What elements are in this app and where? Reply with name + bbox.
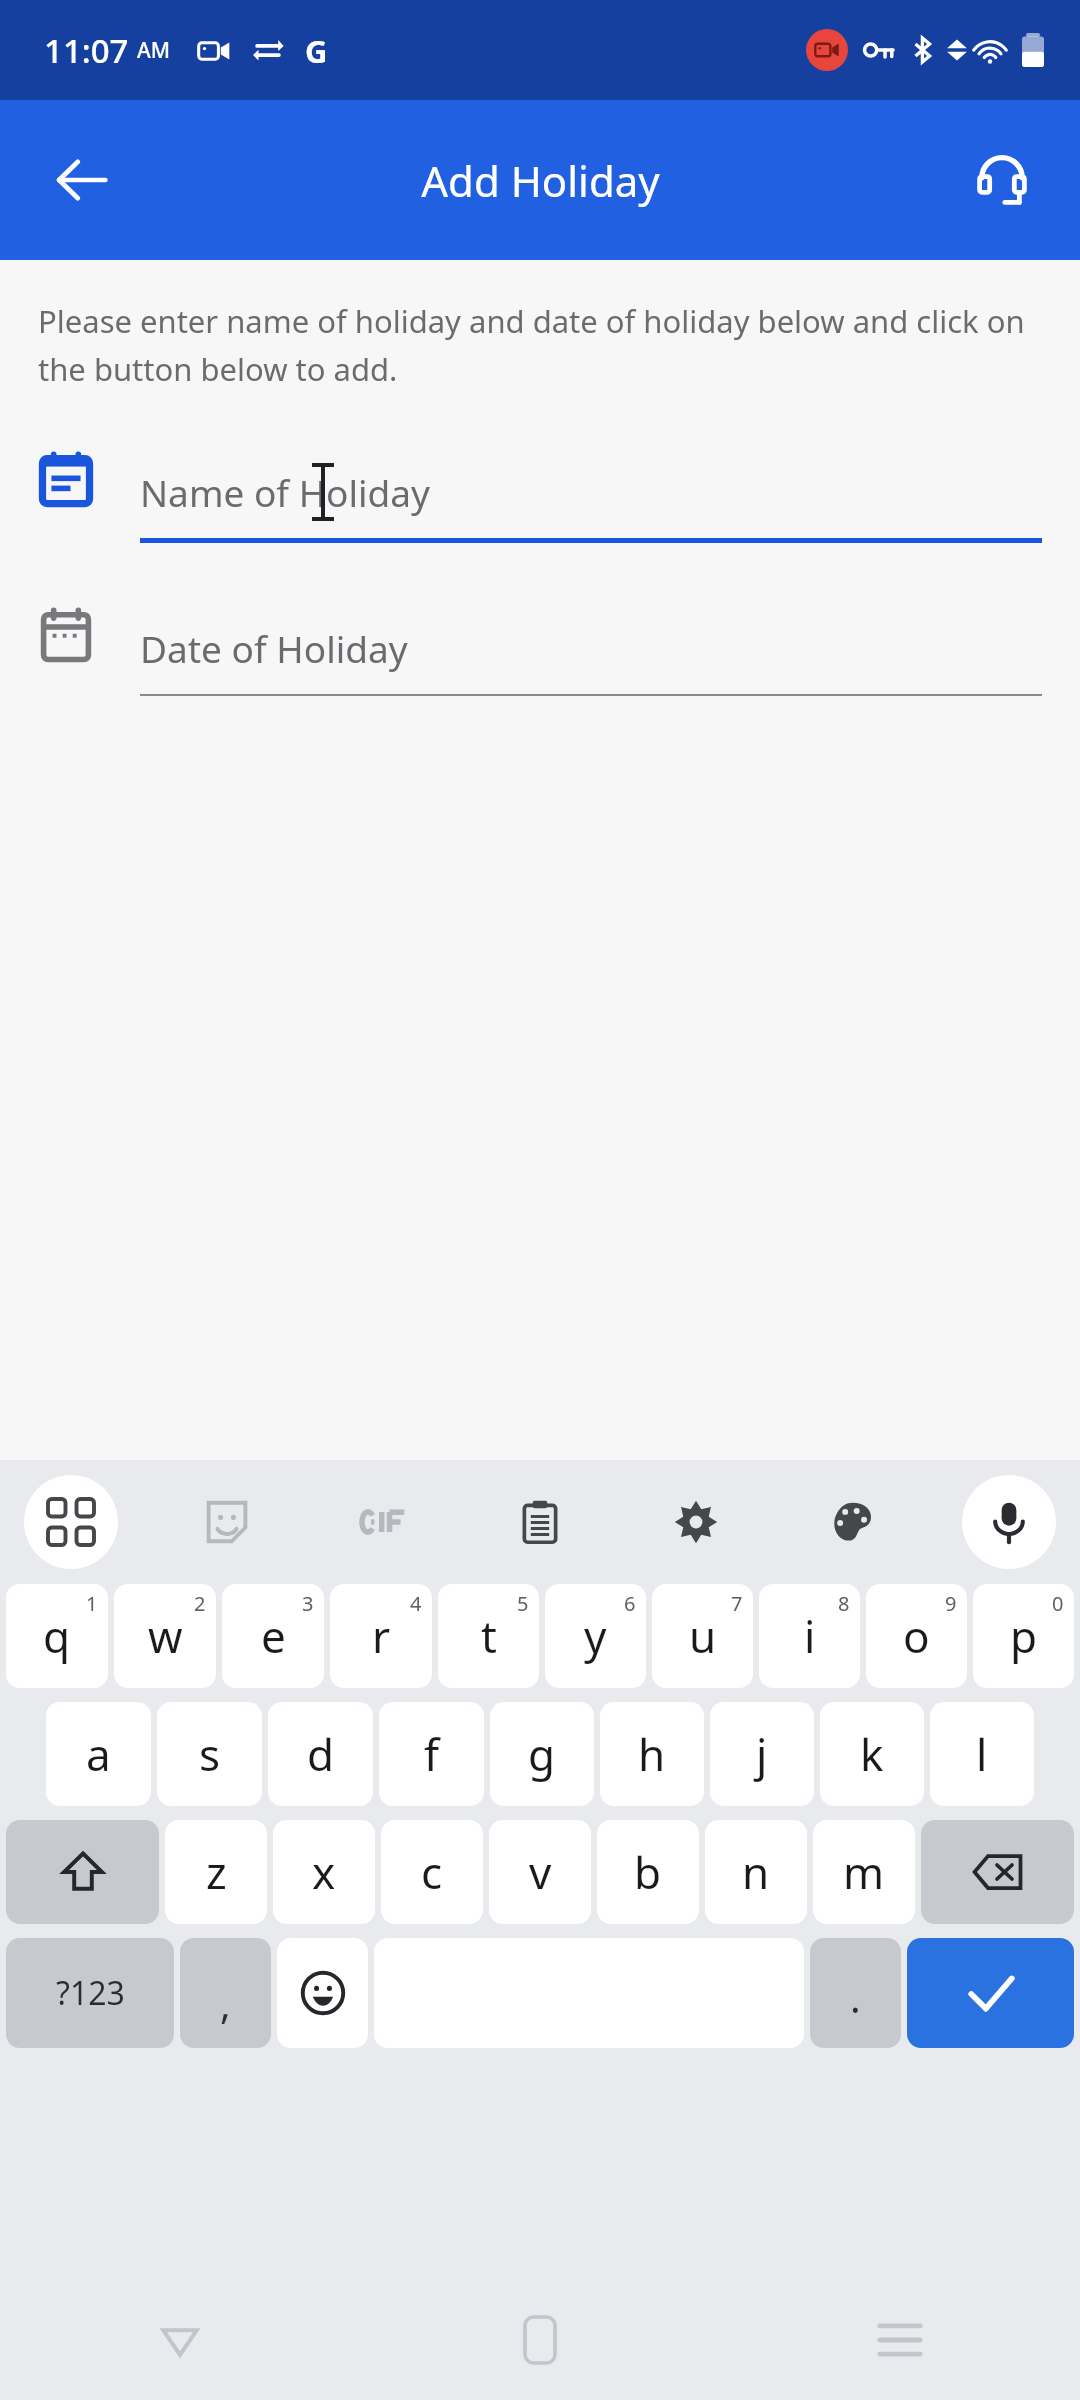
button[interactable]: r [330,1584,432,1688]
button[interactable]: t [438,1584,539,1688]
staticText: Name of Holiday [140,467,430,517]
button[interactable]: Backspace [921,1820,1074,1924]
button[interactable]: y [545,1584,646,1688]
staticText: y [584,1606,607,1666]
staticText: f [424,1724,440,1784]
button[interactable]: , [180,1938,271,2048]
staticText: Date of Holiday [140,623,408,673]
staticText: Add Holiday [421,152,660,209]
button[interactable]: x [273,1820,375,1924]
button[interactable]: Date of Holiday [38,602,1042,722]
button[interactable]: Clipboard [493,1475,587,1569]
staticText: o [903,1606,930,1666]
button[interactable]: a [46,1702,151,1806]
staticText: x [312,1842,336,1902]
staticText: j [756,1724,768,1784]
staticText: r [372,1606,391,1666]
button[interactable]: m [813,1820,915,1924]
staticText: n [742,1842,770,1902]
staticText: h [638,1724,666,1784]
staticText: t [481,1606,497,1666]
staticText: l [976,1724,988,1784]
staticText: Please enter name of holiday and date of… [38,300,1042,390]
button[interactable]: . [810,1938,901,2048]
button[interactable]: ?123 [6,1938,174,2048]
staticText: 3 [302,1590,314,1617]
button[interactable]: Done [907,1938,1074,2048]
staticText: q [43,1606,71,1666]
staticText: ?123 [56,1971,125,2015]
button[interactable]: Back [0,2280,360,2400]
button[interactable]: Name of Holiday [38,446,1042,566]
button[interactable]: u [652,1584,753,1688]
button[interactable]: Voice input [962,1475,1056,1569]
staticText: 9 [945,1590,957,1617]
staticText: 11:07 [44,28,129,73]
staticText: 5 [517,1590,529,1617]
staticText: AM [137,36,171,65]
staticText: 2 [194,1590,206,1617]
button[interactable]: Shift [6,1820,159,1924]
staticText: 4 [410,1590,422,1617]
button[interactable]: Emoji [277,1938,368,2048]
button[interactable]: c [381,1820,483,1924]
button[interactable]: Recents [720,2280,1080,2400]
button[interactable]: Home [360,2280,720,2400]
staticText: , [220,1976,231,2030]
button[interactable]: n [705,1820,807,1924]
button[interactable]: b [597,1820,699,1924]
button[interactable]: s [157,1702,262,1806]
button[interactable]: j [710,1702,814,1806]
staticText: s [199,1724,221,1784]
button[interactable]: GIF [337,1475,431,1569]
staticText: v [529,1842,552,1902]
button[interactable]: Theme [806,1475,900,1569]
staticText: . [850,1970,861,2024]
staticText: k [860,1724,884,1784]
button[interactable]: h [600,1702,704,1806]
staticText: d [307,1724,335,1784]
staticText: G [305,30,328,72]
staticText: 6 [624,1590,636,1617]
button[interactable]: Settings [649,1475,743,1569]
staticText: m [843,1842,885,1902]
button[interactable]: Stickers [180,1475,274,1569]
button[interactable]: z [165,1820,267,1924]
button[interactable]: Back [34,132,130,228]
staticText: b [634,1842,662,1902]
button[interactable]: q [6,1584,108,1688]
button[interactable]: o [866,1584,967,1688]
button[interactable]: p [973,1584,1074,1688]
button[interactable]: e [222,1584,324,1688]
staticText: i [804,1606,816,1666]
staticText: c [421,1842,443,1902]
button[interactable]: d [268,1702,373,1806]
button[interactable]: k [820,1702,924,1806]
button[interactable]: i [759,1584,860,1688]
staticText: w [148,1606,183,1666]
staticText: a [86,1724,111,1784]
staticText: 1 [86,1590,98,1617]
button[interactable]: f [379,1702,484,1806]
button[interactable]: l [930,1702,1034,1806]
staticText: 7 [731,1590,743,1617]
button[interactable]: v [489,1820,591,1924]
staticText: 0 [1052,1590,1064,1617]
staticText: 8 [838,1590,850,1617]
staticText: u [689,1606,717,1666]
button[interactable]: w [114,1584,216,1688]
staticText: g [528,1724,556,1784]
staticText: z [206,1842,227,1902]
button[interactable]: Support [954,132,1050,228]
button[interactable]: g [490,1702,594,1806]
button[interactable]: Apps [24,1475,118,1569]
staticText: p [1010,1606,1038,1666]
staticText: e [261,1606,286,1666]
